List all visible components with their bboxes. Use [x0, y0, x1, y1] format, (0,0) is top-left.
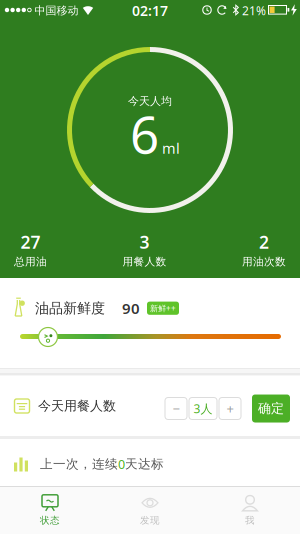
- staticText: 总用油: [14, 255, 47, 268]
- button[interactable]: +: [219, 395, 241, 417]
- staticText: 6: [130, 99, 159, 169]
- staticText: 0: [118, 455, 125, 473]
- button[interactable]: 确定: [252, 392, 290, 420]
- staticText: −: [172, 400, 179, 417]
- staticText: 发现: [140, 514, 160, 526]
- staticText: 3人: [193, 400, 212, 417]
- staticText: 今天用餐人数: [38, 398, 116, 414]
- staticText: 02:17: [132, 1, 168, 20]
- staticText: +: [226, 400, 233, 417]
- staticText: 90: [122, 298, 140, 318]
- button[interactable]: 我: [200, 487, 300, 534]
- staticText: 上一次，连续: [40, 456, 118, 472]
- staticText: 21%: [242, 2, 266, 19]
- button[interactable]: [38, 327, 57, 346]
- staticText: 用油次数: [242, 255, 286, 268]
- staticText: ml: [162, 138, 180, 158]
- staticText: 我: [245, 514, 255, 526]
- button[interactable]: 发现: [100, 487, 200, 534]
- staticText: 天达标: [125, 456, 164, 472]
- staticText: 新鲜++: [150, 303, 176, 314]
- staticText: 油品新鲜度: [35, 299, 105, 317]
- staticText: 确定: [258, 400, 284, 417]
- staticText: 今天人均: [128, 94, 172, 108]
- button[interactable]: −: [165, 395, 187, 417]
- staticText: 中国移动: [34, 4, 78, 17]
- staticText: 状态: [40, 514, 60, 526]
- button[interactable]: 新鲜++: [147, 302, 179, 315]
- button[interactable]: 状态: [0, 487, 100, 534]
- staticText: 27: [20, 230, 40, 254]
- staticText: 3: [139, 230, 149, 254]
- staticText: 用餐人数: [122, 255, 166, 268]
- staticText: 2: [259, 230, 269, 254]
